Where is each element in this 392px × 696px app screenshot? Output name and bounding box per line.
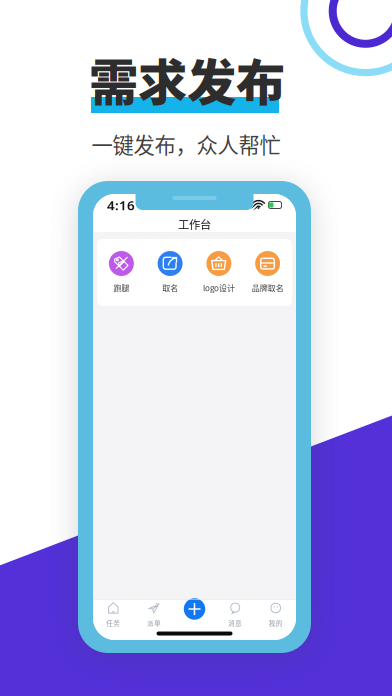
button[interactable]: logo设计 — [196, 251, 242, 294]
button[interactable]: 任务 — [96, 602, 130, 628]
button[interactable]: 我的 — [259, 602, 293, 628]
staticText: 取名 — [162, 282, 178, 294]
staticText: 我的 — [269, 618, 283, 628]
staticText: 派单 — [147, 618, 161, 628]
staticText: 消息 — [228, 618, 242, 628]
button[interactable]: 消息 — [218, 602, 252, 628]
staticText: 一键发布，众人帮忙 — [91, 129, 280, 159]
staticText: 品牌取名 — [252, 282, 284, 294]
button[interactable]: 派单 — [137, 602, 171, 628]
staticText: 工作台 — [178, 216, 211, 232]
button[interactable]: Create — [182, 597, 206, 621]
staticText: •••• — [238, 201, 250, 209]
button[interactable]: 取名 — [147, 251, 193, 294]
staticText: 跑腿 — [113, 282, 129, 294]
staticText: 需求发布 — [89, 43, 285, 115]
button[interactable]: 跑腿 — [98, 251, 144, 294]
button[interactable]: 品牌取名 — [245, 251, 291, 294]
staticText: 4:16 — [107, 196, 135, 214]
staticText: 任务 — [106, 618, 120, 628]
staticText: logo设计 — [203, 282, 235, 294]
